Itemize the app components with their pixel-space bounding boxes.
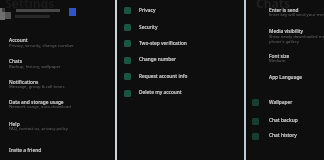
staticText: Help [9,121,20,128]
button[interactable] [117,19,244,36]
staticText: Network usage, auto-download [9,104,71,110]
staticText: Request account info [139,73,188,80]
button[interactable] [0,75,115,95]
staticText: Notifications [9,79,39,86]
staticText: Change number [139,56,177,63]
staticText: Chat backup [269,117,298,124]
staticText: Security [139,24,158,31]
button[interactable] [0,95,115,115]
button[interactable] [117,85,244,102]
button[interactable] [0,54,115,74]
staticText: Chats [256,0,290,11]
staticText: Chats [9,58,22,65]
staticText: Invite a friend [9,147,42,154]
staticText: Privacy, security, change number [9,43,74,49]
button[interactable] [246,94,324,111]
button[interactable] [246,71,324,86]
button[interactable] [117,2,244,19]
button[interactable] [246,128,324,145]
button[interactable] [117,68,244,85]
staticText: FAQ, contact us, privacy policy [9,126,68,132]
button[interactable] [117,52,244,69]
button[interactable] [246,26,324,47]
button[interactable] [246,113,324,130]
staticText: Delete my account [139,89,182,96]
button[interactable] [0,5,115,23]
staticText: Medium [269,58,286,64]
button[interactable] [246,50,324,65]
button[interactable] [0,33,115,53]
button[interactable] [0,117,115,137]
staticText: Privacy [139,7,156,14]
button[interactable] [0,142,115,158]
staticText: Enter is send [269,7,299,14]
staticText: Settings [5,0,55,11]
staticText: Chat history [269,132,297,139]
staticText: Two-step verification [139,40,187,47]
staticText: Backup, history, wallpaper [9,64,61,70]
button[interactable] [117,35,244,52]
staticText: App Language [269,74,303,81]
staticText: Media visibility [269,28,304,35]
staticText: Show newly downloaded me [269,34,324,40]
staticText: Enter key will send your mess [269,12,324,18]
staticText: Account [9,37,28,44]
button[interactable] [246,4,324,19]
staticText: Data and storage usage [9,99,64,106]
staticText: Wallpaper [269,99,293,106]
staticText: Message, group & call tones [9,84,65,90]
staticText: Font size [269,53,290,60]
staticText: phone's gallery [269,39,299,45]
